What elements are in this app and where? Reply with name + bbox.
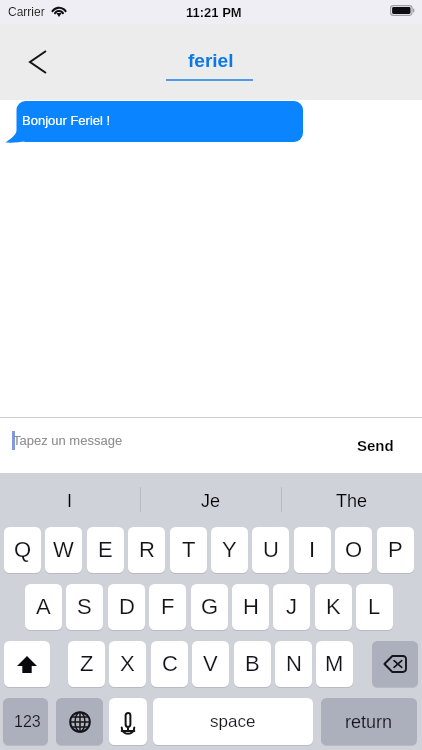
button[interactable]: F: [149, 584, 186, 630]
button[interactable]: Switch keyboard: [56, 698, 103, 745]
button[interactable]: X: [109, 641, 146, 687]
staticText: O: [345, 537, 363, 562]
staticText: W: [53, 537, 74, 562]
button[interactable]: 123: [3, 698, 48, 745]
staticText: Bonjour Feriel !: [22, 113, 111, 128]
staticText: T: [182, 537, 196, 562]
button[interactable]: V: [192, 641, 229, 687]
staticText: B: [245, 651, 260, 676]
button[interactable]: L: [356, 584, 393, 630]
button[interactable]: I: [0, 473, 140, 520]
button[interactable]: R: [128, 527, 165, 573]
button[interactable]: E: [87, 527, 124, 573]
staticText: N: [286, 651, 302, 676]
staticText: return: [345, 712, 393, 732]
staticText: 123: [14, 713, 41, 731]
staticText: R: [139, 537, 155, 562]
staticText: Je: [201, 491, 221, 511]
staticText: Y: [222, 537, 237, 562]
button[interactable]: P: [377, 527, 414, 573]
button[interactable]: K: [315, 584, 352, 630]
staticText: U: [263, 537, 279, 562]
button[interactable]: Send: [349, 418, 402, 473]
staticText: A: [36, 594, 51, 619]
button[interactable]: B: [234, 641, 271, 687]
button[interactable]: Dictate: [109, 698, 147, 745]
button[interactable]: U: [252, 527, 289, 573]
button[interactable]: N: [275, 641, 312, 687]
staticText: Tapez un message: [13, 433, 123, 448]
button[interactable]: O: [335, 527, 372, 573]
button[interactable]: Tapez un message: [13, 418, 422, 473]
staticText: E: [98, 537, 113, 562]
button[interactable]: D: [108, 584, 145, 630]
button[interactable]: Shift: [4, 641, 50, 687]
staticText: P: [388, 537, 403, 562]
button[interactable]: Y: [211, 527, 248, 573]
staticText: 11:21 PM: [186, 5, 242, 20]
button[interactable]: A: [25, 584, 62, 630]
staticText: C: [162, 651, 178, 676]
staticText: Carrier: [8, 5, 45, 18]
staticText: space: [210, 712, 256, 731]
button[interactable]: J: [273, 584, 310, 630]
staticText: G: [201, 594, 219, 619]
staticText: feriel: [188, 50, 234, 71]
button[interactable]: H: [232, 584, 269, 630]
button[interactable]: G: [191, 584, 228, 630]
staticText: F: [161, 594, 175, 619]
staticText: X: [120, 651, 135, 676]
button[interactable]: return: [321, 698, 417, 745]
staticText: H: [243, 594, 259, 619]
button[interactable]: Je: [140, 473, 281, 520]
button[interactable]: Back: [18, 40, 58, 84]
button[interactable]: T: [170, 527, 207, 573]
staticText: K: [326, 594, 341, 619]
staticText: Q: [14, 537, 32, 562]
staticText: I: [67, 491, 73, 511]
staticText: The: [336, 491, 368, 511]
staticText: Send: [357, 437, 394, 454]
button[interactable]: I: [294, 527, 331, 573]
staticText: M: [325, 651, 344, 676]
staticText: V: [203, 651, 218, 676]
button[interactable]: space: [153, 698, 313, 745]
staticText: Z: [80, 651, 94, 676]
button[interactable]: Delete: [372, 641, 418, 687]
button[interactable]: Z: [68, 641, 105, 687]
button[interactable]: C: [151, 641, 188, 687]
button[interactable]: The: [281, 473, 422, 520]
staticText: D: [119, 594, 135, 619]
staticText: L: [368, 594, 381, 619]
staticText: J: [286, 594, 297, 619]
button[interactable]: S: [66, 584, 103, 630]
button[interactable]: M: [316, 641, 353, 687]
button[interactable]: Q: [4, 527, 41, 573]
button[interactable]: W: [45, 527, 82, 573]
staticText: S: [77, 594, 92, 619]
staticText: I: [309, 537, 316, 562]
